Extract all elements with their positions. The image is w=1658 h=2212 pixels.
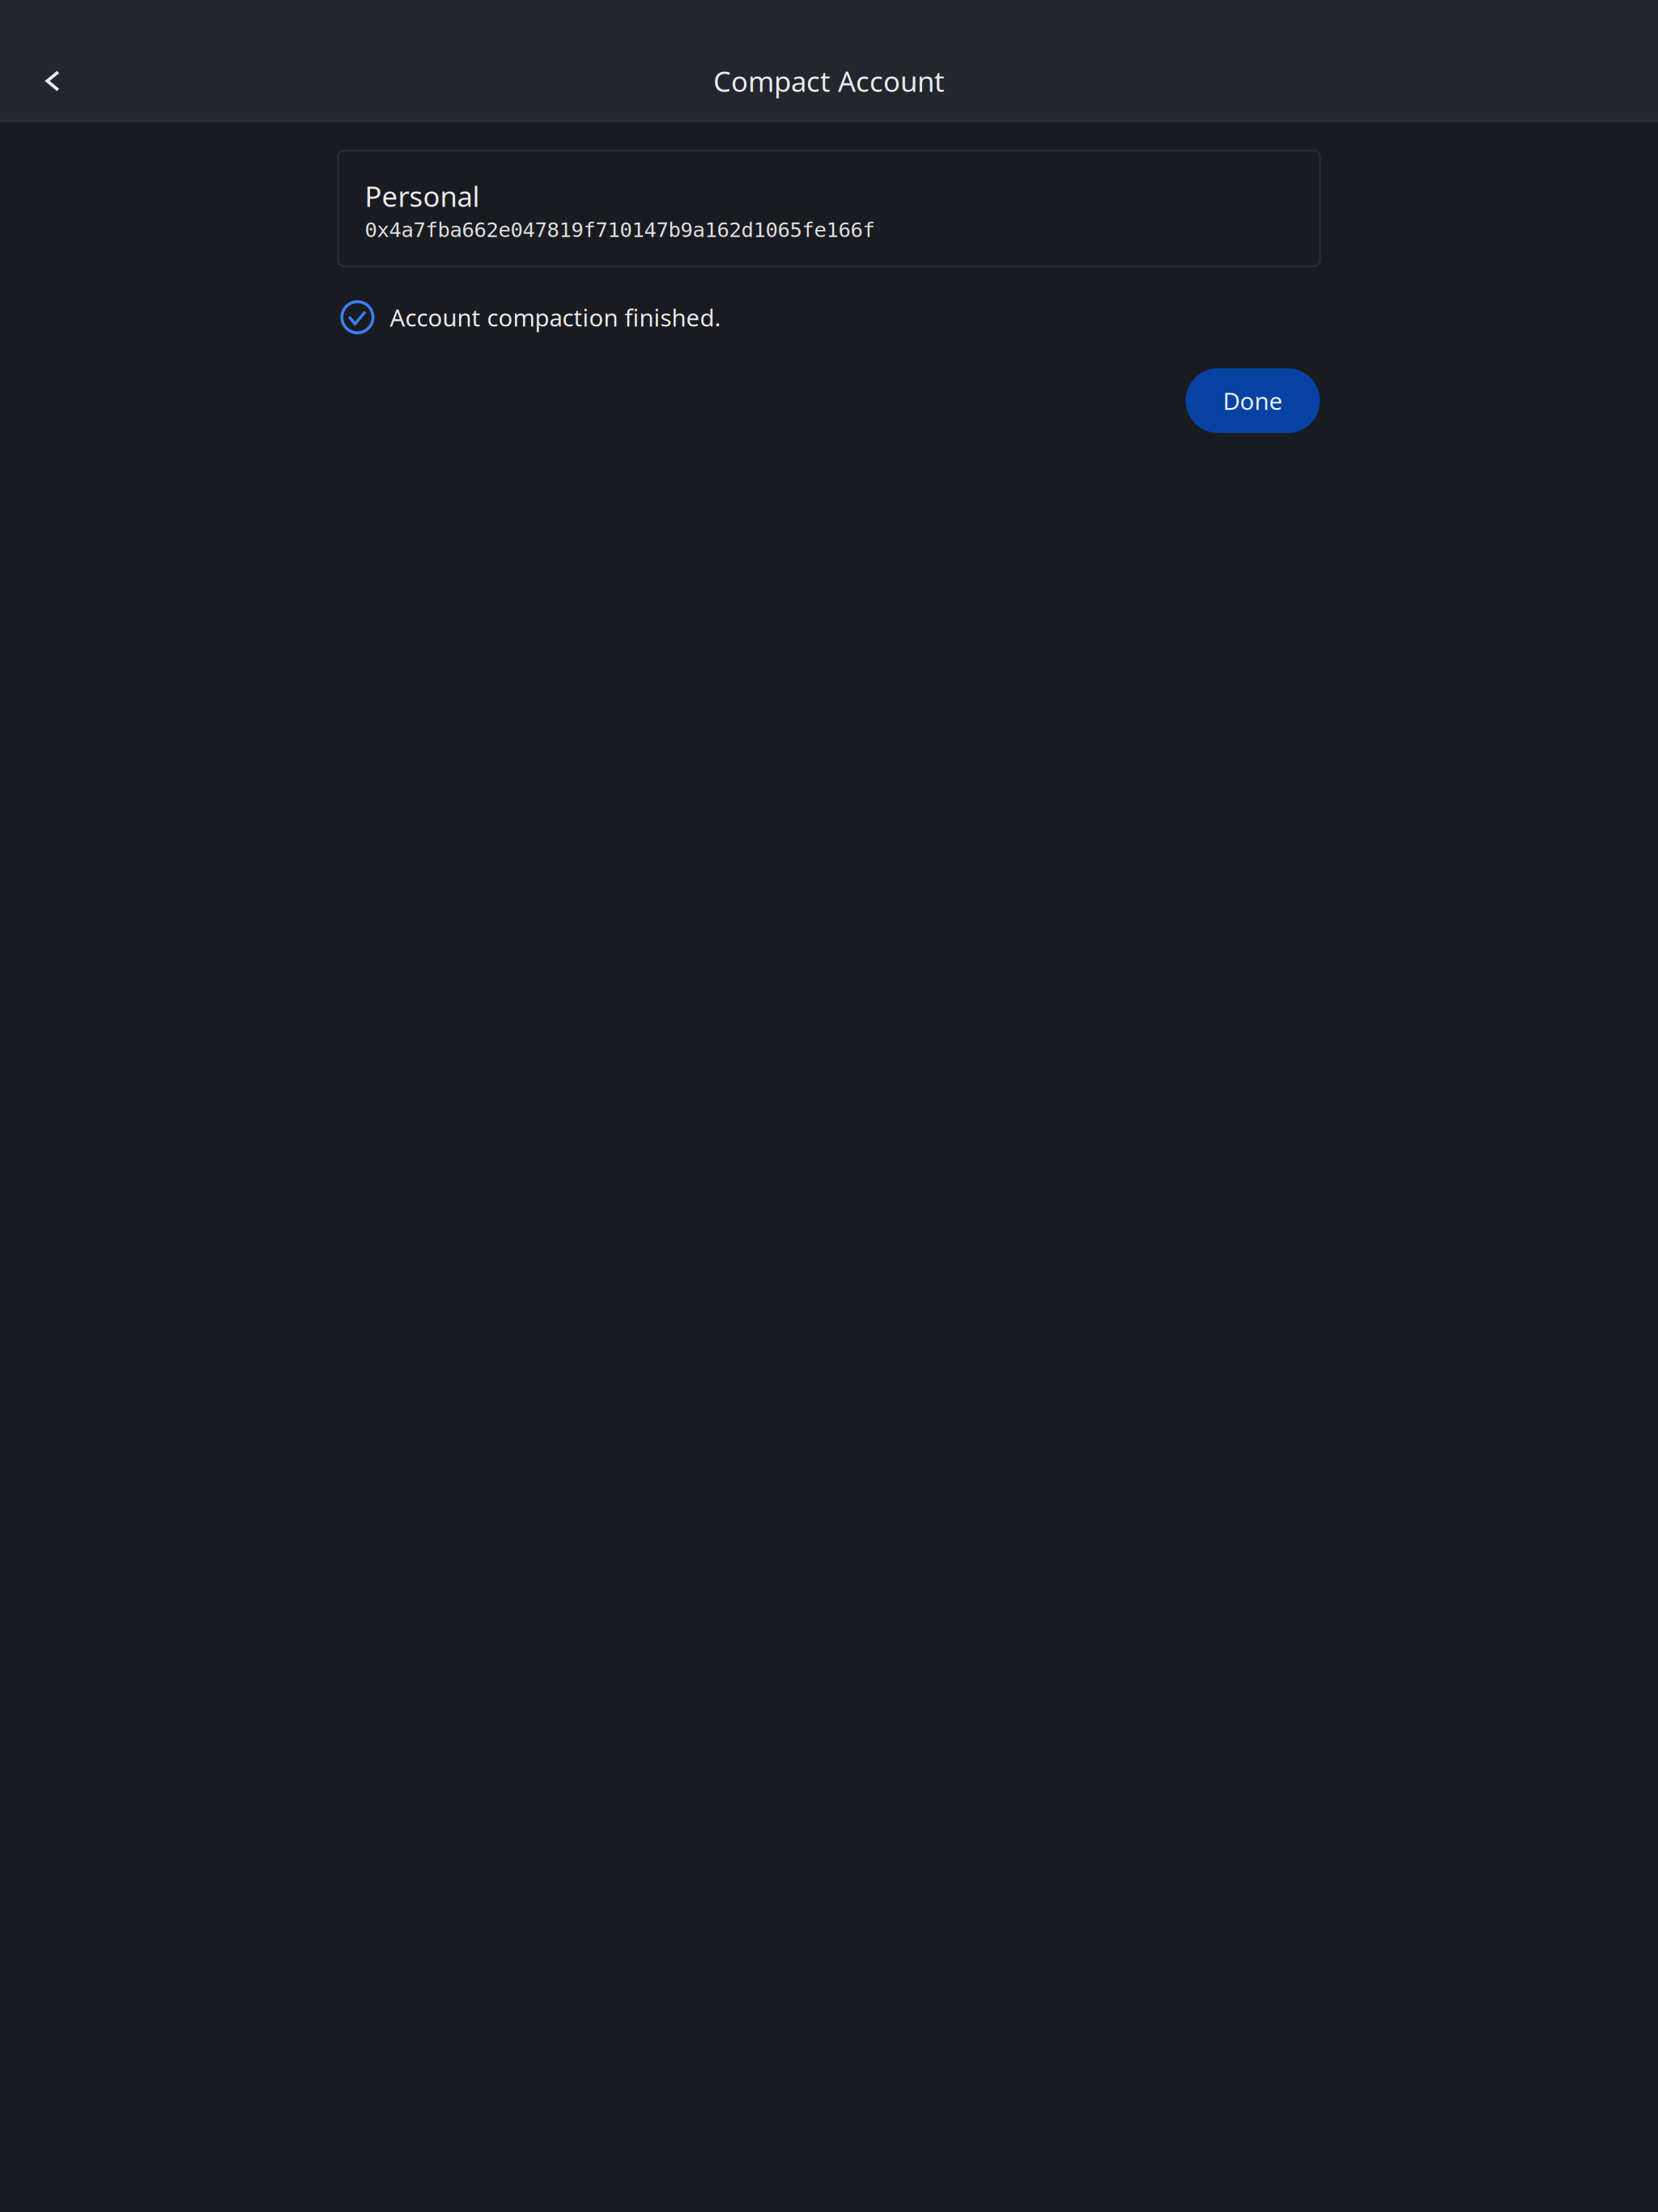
staticText: Account compaction finished. <box>390 302 721 333</box>
staticText: Personal <box>365 177 480 215</box>
button[interactable]: Back <box>22 42 83 120</box>
button[interactable]: Done <box>1186 368 1320 433</box>
staticText: Done <box>1223 385 1283 416</box>
staticText: 0x4a7fba662e047819f710147b9a162d1065fe16… <box>365 218 875 242</box>
staticText: Compact Account <box>713 62 945 100</box>
